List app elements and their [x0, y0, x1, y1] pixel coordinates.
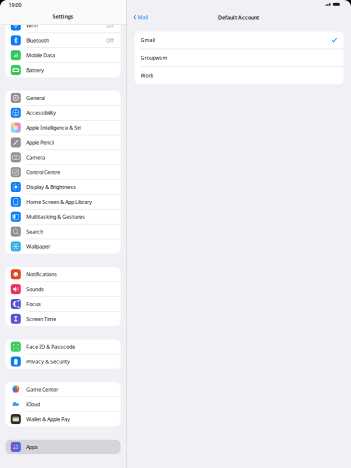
staticText: Sounds [26, 286, 44, 293]
staticText: Apps [26, 443, 38, 450]
staticText: Groupwsm [141, 54, 168, 61]
button[interactable]: Display & Brightness [5, 180, 121, 194]
staticText: Focus [26, 300, 41, 307]
staticText: Wallpaper [26, 243, 50, 250]
staticText: Accessibility [26, 109, 56, 116]
staticText: Mobile Data [26, 52, 55, 59]
staticText: General [26, 94, 45, 101]
staticText: Off [106, 22, 114, 29]
button[interactable]: Game Center [5, 382, 121, 396]
button[interactable]: iCloud [5, 397, 121, 411]
staticText: Apple Pencil [26, 139, 54, 146]
staticText: Default Account [218, 14, 259, 21]
staticText: Gmail [141, 36, 155, 44]
button[interactable]: Apple Pencil [5, 135, 121, 150]
staticText: Face ID & Passcode [26, 343, 75, 350]
staticText: Display & Brightness [26, 183, 76, 191]
staticText: Screen Time [26, 315, 56, 322]
button[interactable]: Wallet & Apple Pay [5, 412, 121, 426]
button[interactable]: Screen Time [5, 312, 121, 326]
staticText: Camera [26, 154, 45, 161]
staticText: Privacy & Security [26, 358, 70, 365]
button[interactable]: Mail [131, 12, 150, 23]
staticText: Search [26, 228, 43, 235]
staticText: Wi-Fi [26, 22, 38, 29]
button[interactable]: Privacy & Security [5, 354, 121, 369]
staticText: Apple Intelligence & Siri [26, 124, 81, 131]
button[interactable]: Face ID & Passcode [5, 339, 121, 354]
staticText: Battery [26, 66, 44, 74]
button[interactable]: General [5, 91, 121, 105]
button[interactable]: Notifications [5, 267, 121, 281]
staticText: Off [106, 37, 114, 44]
button[interactable]: Accessibility [5, 105, 121, 120]
button[interactable]: Groupwsm [135, 49, 344, 66]
staticText: Wallet & Apple Pay [26, 415, 70, 423]
button[interactable]: Battery [5, 63, 121, 77]
button[interactable]: Mobile Data [5, 48, 121, 62]
staticText: 19:00 [9, 1, 22, 8]
button[interactable]: Wallpaper [5, 239, 121, 254]
staticText: Notifications [26, 271, 57, 278]
button[interactable]: Apple Intelligence & Siri [5, 120, 121, 135]
staticText: Mail [138, 14, 148, 21]
staticText: Work [141, 72, 154, 79]
staticText: Control Centre [26, 169, 60, 176]
button[interactable]: Sounds [5, 282, 121, 296]
button[interactable]: Focus [5, 297, 121, 311]
staticText: Game Center [26, 386, 58, 393]
button[interactable]: Control Centre [5, 165, 121, 179]
button[interactable]: Wi-Fi [5, 18, 121, 33]
staticText: Home Screen & App Library [26, 198, 92, 205]
button[interactable]: Gmail [135, 31, 344, 49]
button[interactable]: Bluetooth [5, 33, 121, 47]
button[interactable]: Search [5, 224, 121, 239]
button[interactable]: Apps [5, 440, 121, 454]
staticText: Settings [52, 13, 73, 20]
button[interactable]: Home Screen & App Library [5, 195, 121, 209]
button[interactable]: Camera [5, 150, 121, 164]
staticText: iCloud [26, 401, 40, 408]
staticText: Bluetooth [26, 37, 49, 44]
button[interactable]: Multitasking & Gestures [5, 209, 121, 224]
button[interactable]: Work [135, 67, 344, 84]
staticText: Multitasking & Gestures [26, 213, 85, 220]
